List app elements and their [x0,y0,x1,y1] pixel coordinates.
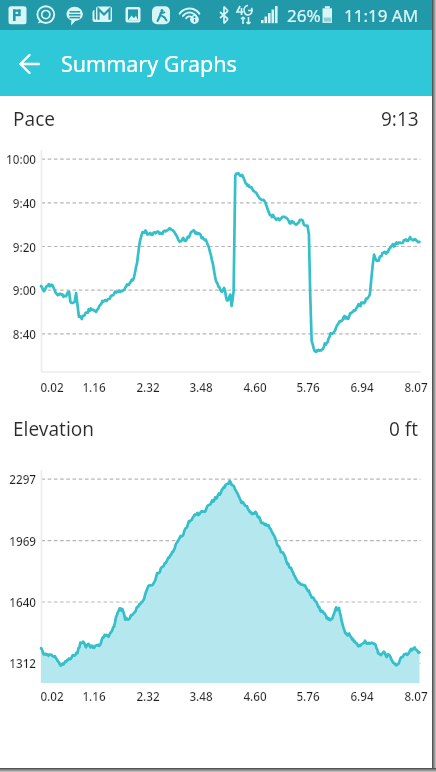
staticText: 5.76 [296,379,320,395]
staticText: 1312 [9,655,36,671]
staticText: 4.60 [243,379,267,395]
staticText: 8.07 [404,688,428,704]
staticText: 0.02 [40,379,64,395]
staticText: 9:40 [12,195,36,211]
staticText: 0.02 [40,688,64,704]
staticText: 2.32 [136,688,160,704]
staticText: 11:19 AM [344,4,419,27]
staticText: Elevation [13,416,95,442]
staticText: 9:00 [12,282,36,298]
staticText: 3.48 [189,688,213,704]
staticText: 1640 [9,594,36,610]
button[interactable]: Back [0,30,56,96]
staticText: 0 ft [389,416,419,442]
staticText: 1.16 [82,688,106,704]
staticText: 1969 [9,533,36,549]
staticText: 6.94 [350,688,374,704]
staticText: 1.16 [82,379,106,395]
staticText: 3.48 [189,379,213,395]
staticText: 8.07 [404,379,428,395]
staticText: 9:20 [12,239,36,255]
staticText: 10:00 [6,151,36,167]
staticText: 4.60 [243,688,267,704]
staticText: 8:40 [12,326,36,342]
staticText: 2297 [9,471,36,487]
staticText: Summary Graphs [61,49,237,78]
staticText: 5.76 [296,688,320,704]
staticText: Pace [13,106,55,132]
staticText: 6.94 [350,379,374,395]
staticText: 2.32 [136,379,160,395]
staticText: 9:13 [381,106,419,132]
staticText: 26% [287,4,321,27]
